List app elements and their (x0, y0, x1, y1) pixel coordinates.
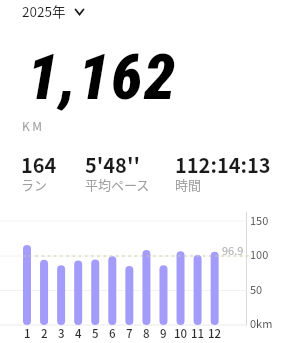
staticText: 164 (21, 150, 57, 179)
staticText: 11 (191, 325, 205, 339)
staticText: 時間 (175, 175, 202, 194)
staticText: 100 (250, 246, 269, 262)
staticText: 96.9 (222, 242, 244, 258)
staticText: 平均ペース (85, 175, 150, 194)
staticText: 1 (24, 325, 31, 339)
staticText: KM (22, 117, 45, 134)
staticText: 2025年 (22, 1, 66, 21)
button[interactable]: 112:14:13 (175, 150, 271, 179)
staticText: 112:14:13 (175, 150, 271, 179)
staticText: ラン (21, 175, 48, 194)
staticText: 1,162 (27, 41, 177, 115)
staticText: 150 (250, 212, 269, 228)
staticText: 8 (143, 325, 150, 339)
staticText: 0km (250, 315, 273, 331)
button[interactable]: 2025年 (16, 0, 72, 24)
staticText: 5'48'' (85, 150, 140, 179)
button[interactable]: 5'48'' (85, 150, 140, 179)
staticText: 9 (160, 325, 167, 339)
staticText: 2 (41, 325, 48, 339)
staticText: 3 (58, 325, 65, 339)
button[interactable]: 164 (21, 150, 57, 179)
staticText: 12 (208, 325, 222, 339)
staticText: 6 (109, 325, 116, 339)
staticText: 4 (75, 325, 82, 339)
other: Select year (74, 8, 85, 16)
staticText: 10 (174, 325, 188, 339)
staticText: 7 (126, 325, 133, 339)
staticText: 5 (92, 325, 99, 339)
staticText: 50 (250, 281, 263, 297)
